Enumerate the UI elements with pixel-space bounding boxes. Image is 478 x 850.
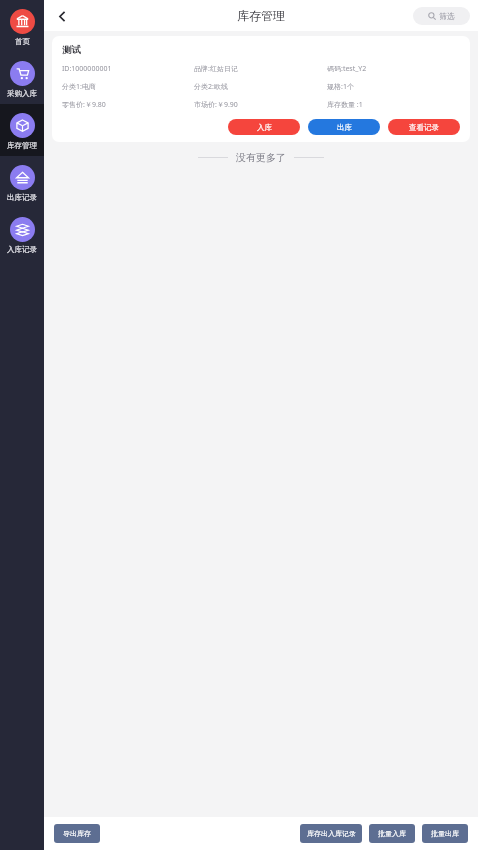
button[interactable]: Back [49,3,75,29]
staticText: 品牌:红姑日记 [194,64,238,74]
staticText: 入库 [257,123,272,132]
button[interactable]: 测试 [52,36,470,142]
button[interactable]: 入库 [228,119,300,135]
button[interactable]: 导出库存 [54,824,100,843]
button[interactable]: 查看记录 [388,119,460,135]
staticText: 库存出入库记录 [307,829,356,838]
button[interactable]: 出库 [308,119,380,135]
staticText: 出库记录 [7,193,37,202]
button[interactable]: 筛选 [413,7,470,25]
staticText: 分类2:欧线 [194,82,228,92]
staticText: 库存数量 :1 [327,100,363,110]
staticText: 入库记录 [7,245,37,254]
staticText: 碼码:test_Y2 [327,64,367,74]
button[interactable]: 批量出库 [422,824,468,843]
staticText: 导出库存 [63,829,91,838]
button[interactable]: 首页 [0,0,44,52]
staticText: 库存管理 [237,8,285,23]
staticText: 批量入库 [378,829,406,838]
button[interactable]: 采购入库 [0,52,44,104]
staticText: 测试 [62,44,81,56]
staticText: 首页 [15,37,30,46]
staticText: 库存管理 [7,141,37,150]
button[interactable]: 库存出入库记录 [300,824,362,843]
button[interactable]: 入库记录 [0,208,44,260]
staticText: 采购入库 [7,89,37,98]
staticText: 没有更多了 [236,151,286,164]
staticText: 零售价:￥9.80 [62,100,106,110]
staticText: 筛选 [439,11,455,21]
staticText: 批量出库 [431,829,459,838]
staticText: 规格:1个 [327,82,354,92]
staticText: 市场价:￥9.90 [194,100,238,110]
button[interactable]: 批量入库 [369,824,415,843]
staticText: 出库 [337,123,352,132]
staticText: 分类1:电商 [62,82,96,92]
staticText: ID:1000000001 [62,64,112,74]
staticText: 查看记录 [409,123,439,132]
button[interactable]: 库存管理 [0,104,44,156]
button[interactable]: 出库记录 [0,156,44,208]
